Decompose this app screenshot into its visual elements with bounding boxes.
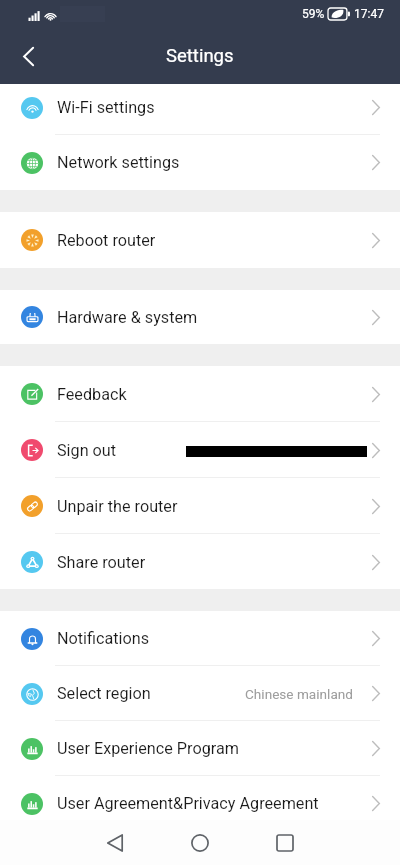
- button[interactable]: Recent apps: [242, 820, 327, 865]
- button[interactable]: Select region: [0, 666, 400, 721]
- staticText: Sign out: [57, 441, 117, 460]
- staticText: Wi-Fi settings: [57, 98, 155, 117]
- staticText: Network settings: [57, 153, 180, 172]
- button[interactable]: Sign out: [0, 422, 400, 478]
- staticText: User Agreement&Privacy Agreement: [57, 794, 319, 813]
- staticText: User Experience Program: [57, 739, 239, 758]
- staticText: 17:47: [354, 7, 384, 21]
- button[interactable]: User Agreement&Privacy Agreement: [0, 776, 400, 820]
- button[interactable]: Back: [0, 28, 56, 84]
- button[interactable]: Reboot router: [0, 212, 400, 268]
- staticText: Hardware & system: [57, 308, 198, 327]
- staticText: 59%: [302, 7, 325, 21]
- button[interactable]: Notifications: [0, 611, 400, 666]
- button[interactable]: Network settings: [0, 135, 400, 190]
- staticText: Select region: [57, 684, 151, 703]
- staticText: Unpair the router: [57, 497, 178, 516]
- staticText: Chinese mainland: [245, 686, 353, 702]
- button[interactable]: Back: [72, 820, 157, 865]
- staticText: Feedback: [57, 385, 127, 404]
- staticText: Reboot router: [57, 231, 156, 250]
- button[interactable]: Hardware & system: [0, 290, 400, 344]
- button[interactable]: User Experience Program: [0, 721, 400, 776]
- button[interactable]: Share router: [0, 534, 400, 589]
- button[interactable]: Unpair the router: [0, 478, 400, 534]
- staticText: Settings: [166, 45, 234, 67]
- staticText: Notifications: [57, 629, 150, 648]
- button[interactable]: Feedback: [0, 366, 400, 422]
- button[interactable]: Home: [157, 820, 242, 865]
- button[interactable]: Wi-Fi settings: [0, 84, 400, 135]
- staticText: Share router: [57, 553, 146, 572]
